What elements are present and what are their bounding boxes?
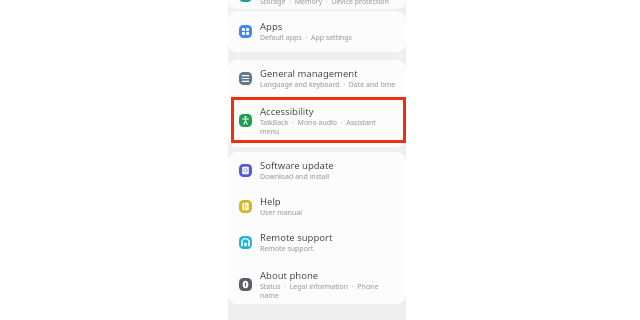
staticText: User manual: [260, 208, 302, 218]
staticText: Remote support: [260, 244, 314, 254]
staticText: Help: [260, 195, 281, 208]
other: Accessibility highlight: [231, 97, 406, 143]
other: Software update: [239, 164, 252, 177]
button[interactable]: Help: [228, 188, 406, 224]
button[interactable]: Software update: [228, 152, 406, 188]
button[interactable]: Accessibility: [228, 96, 406, 144]
other: About phone: [239, 278, 252, 291]
staticText: Default apps · App settings: [260, 33, 352, 43]
other: Remote support: [239, 236, 252, 249]
staticText: Storage · Memory · Device protection: [260, 0, 389, 7]
staticText: Download and install: [260, 172, 330, 182]
button[interactable]: Device care: [228, 0, 406, 9]
staticText: Status · Legal information · Phone name: [260, 282, 379, 300]
staticText: Remote support: [260, 231, 333, 244]
other: Help: [239, 200, 252, 213]
other: Device care: [239, 0, 252, 2]
staticText: TalkBack · Mono audio · Assistant menu: [260, 118, 376, 136]
button[interactable]: Remote support: [228, 224, 406, 260]
staticText: About phone: [260, 269, 319, 282]
other: General management: [239, 72, 252, 85]
other: Apps: [239, 25, 252, 38]
staticText: Accessibility: [260, 105, 314, 118]
staticText: Apps: [260, 20, 283, 33]
staticText: Software update: [260, 159, 334, 172]
button[interactable]: Apps: [228, 11, 406, 51]
button[interactable]: About phone: [228, 260, 406, 304]
staticText: Language and keyboard · Date and time: [260, 80, 396, 90]
other: Accessibility: [239, 114, 252, 127]
button[interactable]: General management: [228, 60, 406, 96]
staticText: General management: [260, 67, 358, 80]
